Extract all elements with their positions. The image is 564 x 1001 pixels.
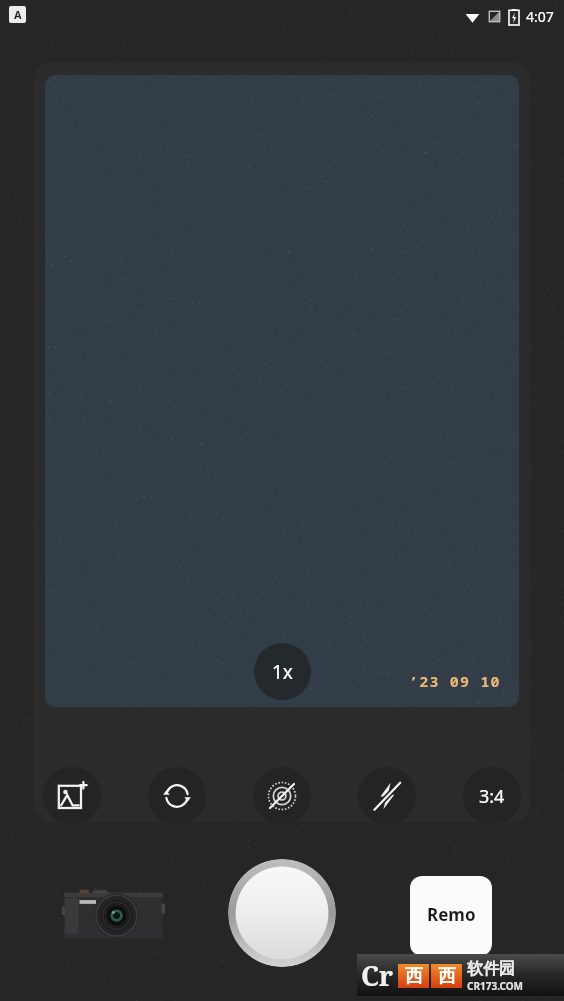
staticText: ’23 09 10 — [409, 671, 501, 691]
staticText: 西 — [438, 965, 456, 988]
staticText: CR173.COM — [467, 979, 524, 993]
button[interactable]: Flash off — [358, 767, 416, 822]
button[interactable]: Gallery — [62, 884, 165, 946]
button[interactable]: Add photo — [43, 767, 101, 822]
staticText: 1x — [272, 659, 293, 685]
staticText: Remo — [427, 903, 476, 926]
staticText: 3:4 — [479, 784, 505, 809]
button[interactable]: Effects off — [253, 767, 311, 822]
button[interactable]: Switch camera — [148, 767, 206, 822]
staticText: 4:07 — [526, 7, 554, 26]
staticText: 软件园 — [467, 959, 515, 979]
staticText: Cr — [361, 957, 394, 994]
staticText: A — [14, 7, 22, 22]
button[interactable]: Shutter — [228, 859, 336, 967]
staticText: 西 — [405, 965, 423, 988]
button[interactable]: 3:4 — [463, 767, 521, 822]
button[interactable]: Remo — [410, 876, 492, 956]
button[interactable]: 1x — [254, 643, 311, 700]
